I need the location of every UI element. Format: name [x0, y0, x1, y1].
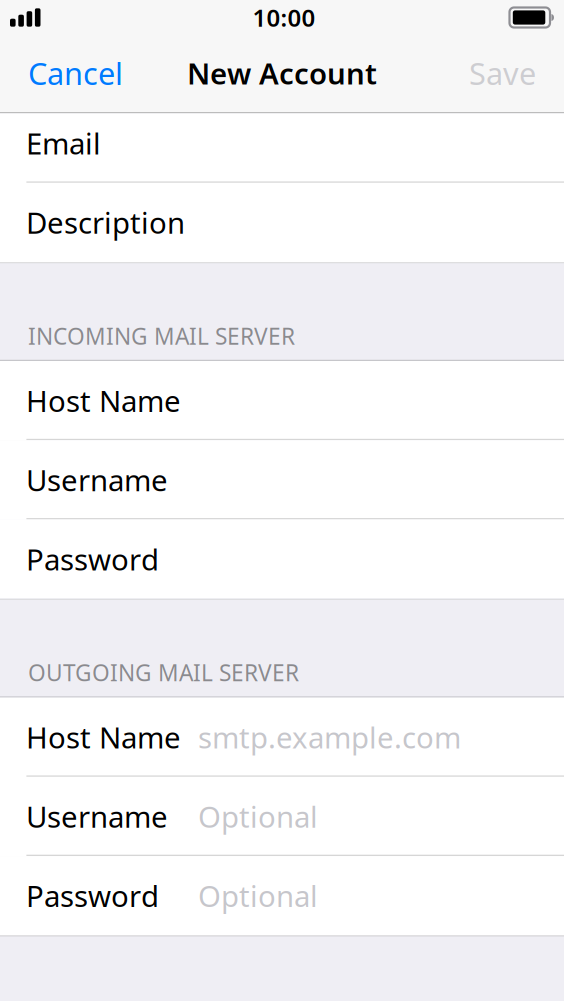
button[interactable]: Username — [0, 777, 564, 856]
staticText: Username — [26, 797, 168, 836]
staticText: Host Name — [26, 718, 181, 757]
staticText: Optional — [198, 876, 318, 915]
staticText: Username — [26, 460, 168, 499]
button[interactable]: Cancel — [15, 42, 136, 104]
button[interactable]: Host Name — [0, 698, 564, 777]
staticText: smtp.example.com — [198, 718, 461, 757]
button[interactable]: Host Name — [0, 361, 564, 440]
button[interactable]: Username — [0, 440, 564, 519]
staticText: 10:00 — [252, 2, 315, 33]
staticText: INCOMING MAIL SERVER — [28, 321, 295, 351]
staticText: Password — [26, 876, 159, 915]
staticText: OUTGOING MAIL SERVER — [28, 657, 299, 688]
button[interactable]: Save — [456, 42, 549, 104]
staticText: Save — [469, 53, 536, 93]
staticText: Optional — [198, 797, 318, 836]
staticText: New Account — [187, 53, 377, 92]
staticText: Host Name — [26, 381, 181, 420]
button[interactable]: Password — [0, 519, 564, 599]
button[interactable]: Description — [0, 183, 564, 262]
staticText: Password — [26, 540, 159, 579]
button[interactable]: Password — [0, 856, 564, 935]
staticText: Cancel — [28, 53, 123, 93]
staticText: Description — [26, 203, 185, 242]
button[interactable]: Email — [0, 113, 564, 183]
staticText: Email — [26, 124, 101, 163]
